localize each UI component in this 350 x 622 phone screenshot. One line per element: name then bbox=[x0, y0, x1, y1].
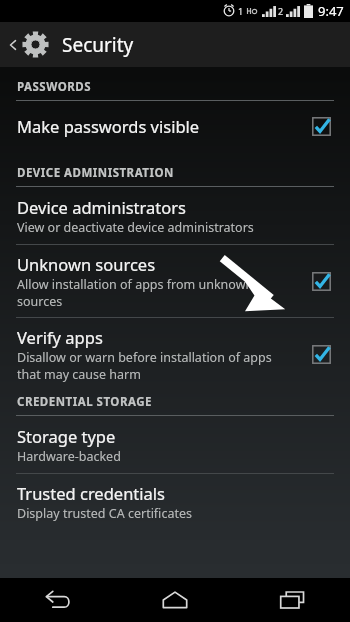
button[interactable]: Storage type bbox=[0, 416, 350, 473]
button[interactable]: Back bbox=[0, 578, 116, 622]
button[interactable]: Trusted credentials bbox=[0, 474, 350, 530]
staticText: Display trusted CA certificates bbox=[17, 505, 192, 522]
button[interactable]: Security bbox=[0, 22, 350, 67]
staticText: Storage type bbox=[17, 425, 116, 447]
staticText: DEVICE ADMINISTRATION bbox=[17, 165, 174, 181]
staticText: Hardware-backed bbox=[17, 448, 121, 465]
button[interactable]: Home bbox=[116, 578, 233, 622]
button[interactable]: Toggle setting bbox=[306, 111, 336, 141]
staticText: PASSWORDS bbox=[17, 79, 92, 95]
staticText: 2 bbox=[278, 5, 284, 17]
staticText: CREDENTIAL STORAGE bbox=[17, 394, 152, 410]
staticText: Allow installation of apps from unknown … bbox=[17, 276, 298, 309]
button[interactable]: Toggle setting bbox=[306, 266, 336, 296]
staticText: 9:47 bbox=[318, 2, 344, 20]
staticText: Make passwords visible bbox=[17, 115, 200, 137]
staticText: Trusted credentials bbox=[17, 482, 165, 504]
button[interactable]: Make passwords visible bbox=[0, 101, 350, 153]
staticText: Device administrators bbox=[17, 196, 186, 218]
button[interactable]: Device administrators bbox=[0, 187, 350, 244]
staticText: 1 bbox=[238, 5, 244, 17]
staticText: Security bbox=[62, 32, 134, 58]
staticText: Unknown sources bbox=[17, 253, 156, 275]
button[interactable]: Unknown sources bbox=[0, 245, 350, 317]
staticText: View or deactivate device administrators bbox=[17, 219, 254, 236]
staticText: Disallow or warn before installation of … bbox=[17, 349, 298, 382]
button[interactable]: Toggle setting bbox=[306, 339, 336, 369]
staticText: Verify apps bbox=[17, 326, 103, 348]
button[interactable]: Verify apps bbox=[0, 318, 350, 388]
button[interactable]: Recent apps bbox=[233, 578, 350, 622]
